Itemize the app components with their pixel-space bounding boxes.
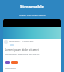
button[interactable]: Streamable xyxy=(0,0,64,18)
staticText: watch and share videos xyxy=(19,13,46,16)
button[interactable]: Download xyxy=(11,61,18,64)
button[interactable]: Share xyxy=(5,61,10,64)
staticText: Streamable xyxy=(20,4,44,10)
staticText: comments xyxy=(5,67,16,70)
staticText: consectetur adipiscing elit sed do xyxy=(5,53,40,56)
staticText: username · 2 days ago xyxy=(9,40,34,43)
staticText: Lorem ipsum dolor sit amet xyxy=(5,48,39,52)
